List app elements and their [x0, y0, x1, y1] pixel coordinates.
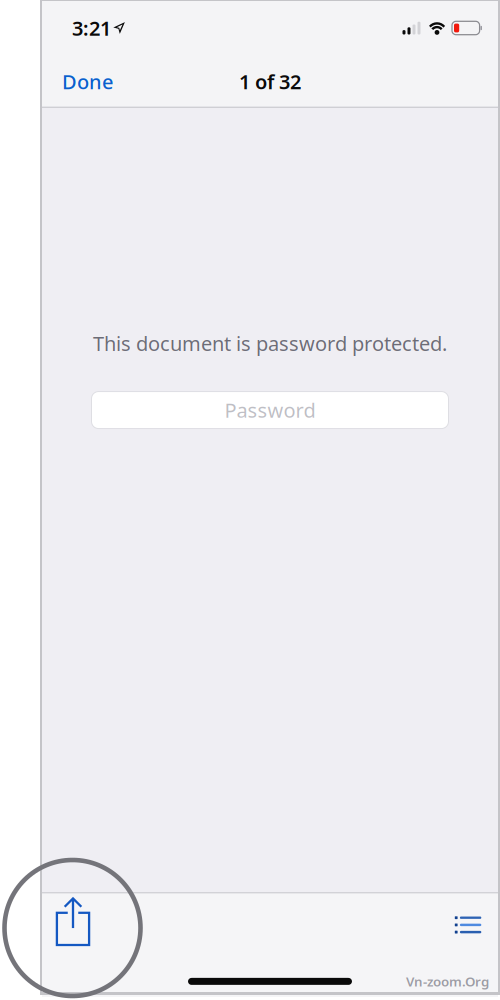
- button[interactable]: Share: [43, 893, 103, 959]
- button[interactable]: Table of contents: [442, 893, 494, 959]
- staticText: This document is password protected.: [93, 330, 447, 357]
- staticText: Done: [62, 68, 113, 95]
- button[interactable]: Done: [42, 55, 133, 107]
- button[interactable]: Password: [91, 392, 448, 429]
- staticText: 3:21: [72, 15, 111, 41]
- staticText: Vn-zoom.Org: [406, 972, 489, 990]
- staticText: Password: [224, 397, 315, 423]
- staticText: 1 of 32: [239, 68, 301, 95]
